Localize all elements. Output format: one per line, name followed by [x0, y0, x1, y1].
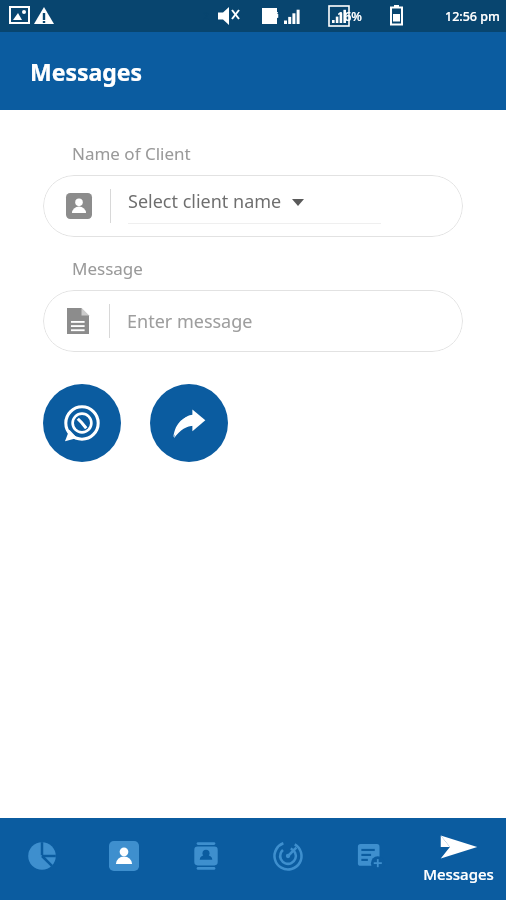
staticText: 12:56 pm — [445, 8, 500, 25]
staticText: Select client name — [128, 189, 282, 214]
staticText: Enter message — [127, 309, 253, 334]
staticText: Messages — [423, 864, 494, 884]
staticText: 16% — [337, 8, 362, 25]
button[interactable]: Select client name — [43, 175, 463, 237]
button[interactable]: Send via WhatsApp — [43, 384, 121, 462]
staticText: Messages — [30, 56, 143, 87]
staticText: Message — [72, 257, 143, 280]
button[interactable]: Clients — [165, 818, 247, 900]
button[interactable]: New Note — [329, 818, 411, 900]
button[interactable]: Dashboard — [0, 818, 83, 900]
button[interactable]: Share — [150, 384, 228, 462]
staticText: 4G — [267, 8, 279, 20]
button[interactable]: Enter message — [43, 290, 463, 352]
button[interactable]: Messages — [411, 818, 506, 900]
button[interactable]: Tracking — [247, 818, 329, 900]
button[interactable]: Contacts — [83, 818, 165, 900]
staticText: Name of Client — [72, 142, 191, 165]
